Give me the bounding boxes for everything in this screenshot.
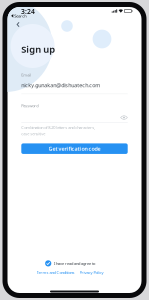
- staticText: Sign up: [21, 43, 55, 55]
- button[interactable]: Privacy Policy: [79, 270, 103, 275]
- staticText: Privacy Policy: [79, 270, 103, 275]
- staticText: I have read and agree to: [54, 261, 95, 266]
- button[interactable]: Show password: [120, 115, 128, 120]
- staticText: Combination of 8-20 letters and characte…: [21, 125, 95, 130]
- staticText: 3:24: [21, 7, 35, 16]
- staticText: Search: [13, 13, 26, 18]
- staticText: Get verification code: [48, 145, 100, 152]
- staticText: case sensitive: [21, 131, 45, 136]
- button[interactable]: Get verification code: [21, 143, 128, 154]
- staticText: nicky.gunakan@dishuatech.com: [21, 82, 100, 89]
- staticText: Terms and Conditions: [36, 270, 74, 275]
- button[interactable]: Back: [13, 19, 24, 30]
- button[interactable]: I have read and agree to: [45, 260, 95, 266]
- button[interactable]: Terms and Conditions: [36, 270, 74, 275]
- staticText: Email: [21, 72, 31, 78]
- staticText: Password: [21, 103, 38, 108]
